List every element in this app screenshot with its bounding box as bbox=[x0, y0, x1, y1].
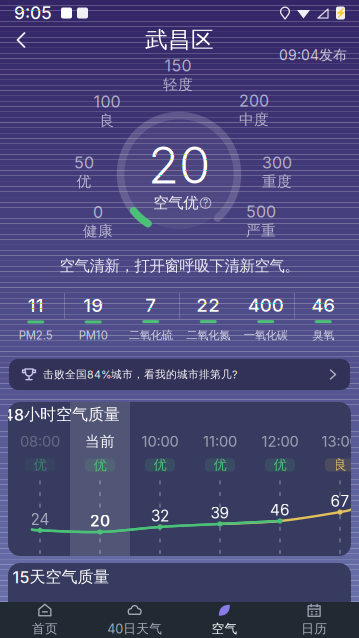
staticText: 武昌区 bbox=[145, 26, 214, 54]
staticText: 200 bbox=[239, 91, 269, 110]
staticText: 20 bbox=[148, 134, 210, 196]
staticText: 击败全国84%城市，看我的城市排第几? bbox=[43, 368, 237, 381]
staticText: 优 bbox=[153, 456, 166, 473]
staticText: 08:00 bbox=[20, 433, 60, 450]
staticText: 二氧化硫 bbox=[129, 328, 173, 342]
staticText: 12:00 bbox=[261, 433, 298, 450]
staticText: 20 bbox=[90, 512, 110, 530]
button[interactable]: 击败全国84%城市，看我的城市排第几? bbox=[9, 359, 350, 390]
staticText: 22 bbox=[196, 294, 220, 316]
staticText: 15天空气质量 bbox=[12, 567, 109, 587]
button[interactable]: 日历 bbox=[269, 602, 359, 638]
staticText: PM2.5 bbox=[19, 328, 53, 342]
staticText: 10:00 bbox=[141, 433, 178, 450]
staticText: 严重 bbox=[246, 221, 276, 240]
staticText: 良 bbox=[99, 111, 114, 130]
staticText: 空气清新，打开窗呼吸下清新空气。 bbox=[59, 256, 299, 276]
staticText: 300 bbox=[262, 153, 292, 172]
staticText: 7 bbox=[145, 294, 156, 316]
staticText: 50 bbox=[74, 153, 94, 172]
staticText: 13:00 bbox=[321, 433, 358, 450]
staticText: 09:04发布 bbox=[279, 46, 347, 64]
staticText: 9:05 bbox=[14, 2, 52, 23]
staticText: 优 bbox=[213, 456, 226, 473]
staticText: 40日天气 bbox=[107, 621, 162, 637]
staticText: 32 bbox=[151, 507, 169, 525]
button[interactable]: 首页 bbox=[0, 602, 90, 638]
staticText: 150 bbox=[164, 56, 191, 75]
staticText: 臭氧 bbox=[312, 328, 334, 342]
staticText: 19 bbox=[83, 294, 103, 316]
staticText: 11:00 bbox=[203, 433, 237, 450]
staticText: 优 bbox=[273, 456, 286, 473]
staticText: 空气优 bbox=[153, 193, 198, 213]
staticText: PM10 bbox=[79, 328, 108, 342]
staticText: 健康 bbox=[83, 222, 113, 240]
staticText: 一氧化碳 bbox=[244, 328, 288, 342]
staticText: 48小时空气质量 bbox=[3, 404, 120, 425]
staticText: 400 bbox=[248, 294, 284, 316]
staticText: ? bbox=[203, 197, 208, 209]
staticText: 500 bbox=[246, 202, 276, 221]
staticText: 当前 bbox=[85, 432, 115, 451]
staticText: 11 bbox=[28, 294, 44, 316]
staticText: 日历 bbox=[301, 621, 327, 637]
staticText: 首页 bbox=[32, 621, 58, 637]
button[interactable]: 40日天气 bbox=[90, 602, 180, 638]
staticText: ⚡ bbox=[334, 7, 346, 18]
staticText: 重度 bbox=[262, 172, 292, 191]
staticText: 优 bbox=[33, 456, 46, 473]
staticText: 空气 bbox=[211, 621, 237, 637]
staticText: 46 bbox=[311, 294, 335, 316]
staticText: 24 bbox=[30, 510, 49, 529]
staticText: 优 bbox=[93, 457, 106, 474]
staticText: 39 bbox=[210, 504, 229, 522]
staticText: 0 bbox=[93, 203, 103, 222]
staticText: 优 bbox=[76, 172, 91, 191]
staticText: 二氧化氮 bbox=[186, 328, 230, 342]
staticText: 中度 bbox=[239, 110, 269, 129]
staticText: 100 bbox=[93, 92, 120, 111]
staticText: 轻度 bbox=[163, 75, 193, 94]
staticText: 良 bbox=[333, 456, 346, 473]
button[interactable]: 返回 bbox=[0, 23, 42, 57]
staticText: 67 bbox=[330, 492, 349, 510]
button[interactable]: 空气 bbox=[179, 602, 269, 638]
staticText: 46 bbox=[270, 501, 290, 519]
